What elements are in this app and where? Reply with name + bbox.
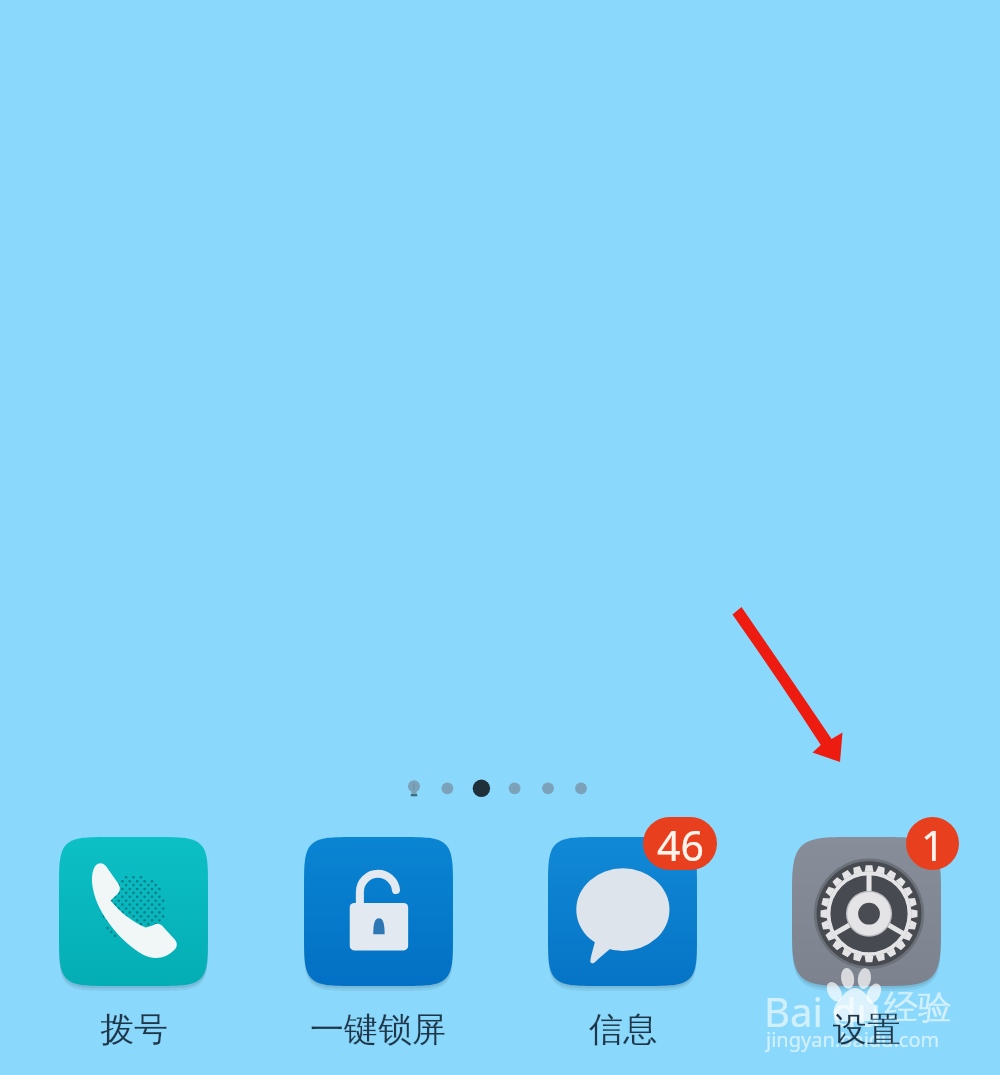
- button[interactable]: 一键锁屏: [248, 1008, 508, 1052]
- button[interactable]: 设置: [737, 1008, 997, 1052]
- staticText: 信息: [589, 1008, 657, 1051]
- button[interactable]: 设置: [784, 833, 949, 998]
- staticText: 经验: [884, 986, 952, 1029]
- staticText: jingyan.baidu.com: [766, 1026, 940, 1053]
- staticText: 设置: [833, 1008, 901, 1051]
- staticText: 一键锁屏: [310, 1008, 446, 1051]
- staticText: 拨号: [100, 1008, 168, 1051]
- button[interactable]: 拨号: [4, 1008, 264, 1052]
- button[interactable]: 信息: [493, 1008, 753, 1052]
- staticText: du: [832, 984, 882, 1038]
- button[interactable]: 拨号: [51, 833, 216, 998]
- staticText: 46: [657, 817, 704, 870]
- staticText: Bai: [764, 984, 823, 1038]
- button[interactable]: 一键锁屏: [296, 833, 461, 998]
- staticText: 1: [921, 817, 945, 870]
- button[interactable]: 信息: [540, 833, 705, 998]
